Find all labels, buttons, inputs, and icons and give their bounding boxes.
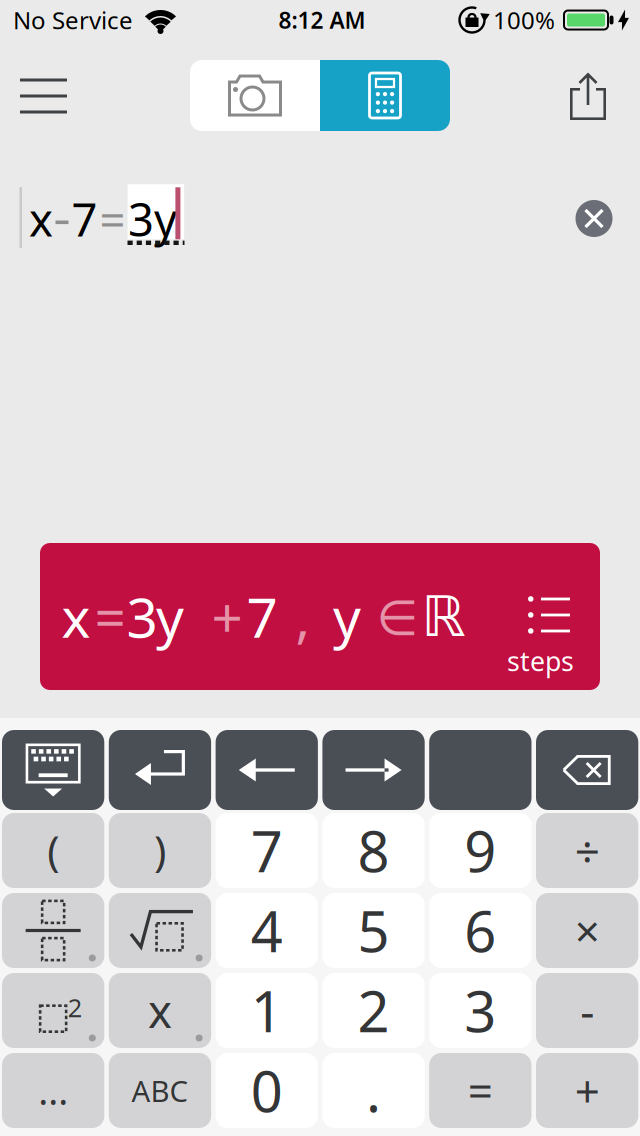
- button[interactable]: Clear input: [575, 200, 612, 237]
- button[interactable]: Square root: [109, 893, 211, 968]
- button[interactable]: .: [322, 1053, 425, 1128]
- staticText: 2: [357, 973, 389, 1048]
- staticText: 3: [464, 973, 496, 1048]
- button[interactable]: Empty key: [429, 730, 531, 810]
- button[interactable]: ×: [536, 893, 638, 968]
- staticText: 3: [126, 580, 157, 653]
- button[interactable]: x: [109, 973, 211, 1048]
- staticText: ×: [575, 901, 600, 960]
- button[interactable]: Move cursor left: [216, 730, 318, 810]
- staticText: 7: [251, 813, 283, 888]
- staticText: -: [580, 981, 594, 1040]
- button[interactable]: Menu: [10, 68, 77, 123]
- staticText: =: [94, 580, 125, 653]
- staticText: +: [211, 580, 242, 653]
- button[interactable]: Square: [2, 973, 104, 1048]
- staticText: 0: [251, 1053, 283, 1128]
- staticText: .: [366, 1053, 381, 1128]
- staticText: 4: [251, 893, 283, 968]
- button[interactable]: ÷: [536, 813, 638, 888]
- button[interactable]: Camera: [190, 60, 320, 131]
- button[interactable]: 7: [216, 813, 318, 888]
- staticText: ÷: [575, 821, 600, 880]
- button[interactable]: Fraction: [2, 893, 104, 968]
- button[interactable]: 0: [216, 1053, 318, 1128]
- staticText: y: [333, 580, 361, 653]
- staticText: x: [29, 189, 53, 249]
- button[interactable]: -: [536, 973, 638, 1048]
- button[interactable]: 4: [216, 893, 318, 968]
- button[interactable]: ...: [2, 1053, 104, 1128]
- staticText: No Service: [13, 4, 133, 36]
- staticText: x: [61, 580, 90, 653]
- button[interactable]: =: [429, 1053, 531, 1128]
- button[interactable]: ABC: [109, 1053, 211, 1128]
- staticText: steps: [507, 643, 574, 679]
- staticText: ∈: [376, 590, 418, 646]
- staticText: ℝ: [421, 584, 465, 649]
- staticText: 2: [68, 991, 82, 1024]
- staticText: 6: [464, 893, 496, 968]
- staticText: ): [154, 823, 166, 878]
- staticText: 1: [251, 973, 283, 1048]
- button[interactable]: 6: [429, 893, 531, 968]
- button[interactable]: +: [536, 1053, 638, 1128]
- button[interactable]: Show solving steps: [40, 543, 600, 690]
- staticText: 5: [357, 893, 389, 968]
- button[interactable]: 1: [216, 973, 318, 1048]
- staticText: 3y: [128, 189, 177, 249]
- button[interactable]: ): [109, 813, 211, 888]
- staticText: (: [47, 823, 59, 878]
- staticText: ...: [38, 1066, 68, 1115]
- staticText: +: [575, 1061, 600, 1120]
- staticText: ,: [295, 580, 310, 653]
- button[interactable]: Hide keyboard: [2, 730, 104, 810]
- button[interactable]: Return: [109, 730, 211, 810]
- staticText: =: [468, 1061, 493, 1120]
- staticText: ABC: [131, 1071, 188, 1110]
- button[interactable]: 5: [322, 893, 425, 968]
- button[interactable]: Move cursor right: [322, 730, 425, 810]
- button[interactable]: 9: [429, 813, 531, 888]
- button[interactable]: Share: [562, 64, 614, 128]
- button[interactable]: Delete: [536, 730, 638, 810]
- staticText: 9: [464, 813, 496, 888]
- staticText: y: [156, 580, 184, 653]
- button[interactable]: Calculator: [320, 60, 450, 131]
- staticText: x: [148, 980, 172, 1041]
- staticText: 8: [357, 813, 389, 888]
- staticText: 7: [246, 580, 277, 653]
- staticText: 8:12 AM: [278, 5, 365, 35]
- button[interactable]: (: [2, 813, 104, 888]
- button[interactable]: 8: [322, 813, 425, 888]
- staticText: =: [100, 189, 126, 249]
- staticText: 7: [71, 189, 97, 249]
- button[interactable]: 2: [322, 973, 425, 1048]
- button[interactable]: 3: [429, 973, 531, 1048]
- staticText: 100%: [493, 4, 555, 36]
